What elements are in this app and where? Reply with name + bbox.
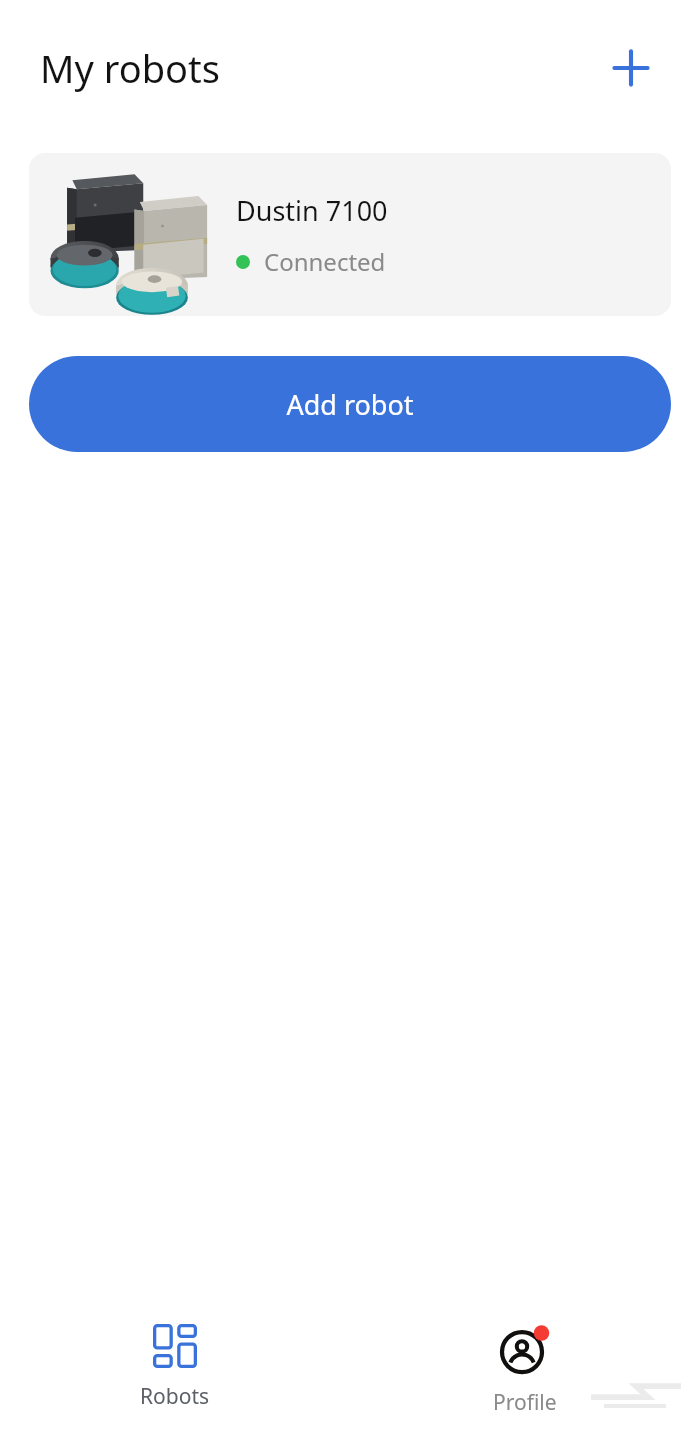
staticText: Profile (493, 1388, 557, 1417)
button[interactable]: Profile (425, 1312, 625, 1417)
button[interactable]: Add robot (594, 31, 668, 105)
button[interactable]: Dustin 7100 (29, 153, 671, 316)
staticText: Robots (140, 1382, 210, 1411)
staticText: Connected (264, 245, 386, 278)
button[interactable]: Add robot (29, 356, 671, 452)
staticText: Dustin 7100 (236, 192, 388, 229)
button[interactable]: Robots (75, 1312, 275, 1411)
staticText: Add robot (286, 386, 414, 423)
staticText: My robots (40, 42, 220, 94)
